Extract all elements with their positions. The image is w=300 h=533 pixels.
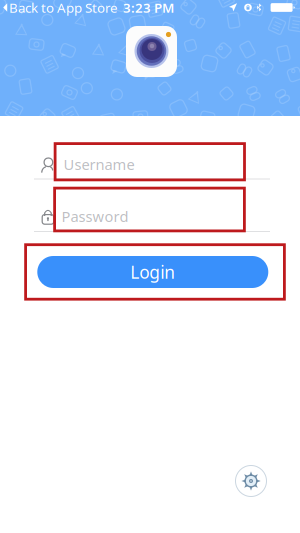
staticText: 3:23 PM <box>123 0 174 16</box>
button[interactable]: Settings <box>235 465 266 496</box>
staticText: Password <box>61 206 128 226</box>
button[interactable]: Login <box>26 245 284 299</box>
staticText: Username <box>63 154 134 174</box>
staticText: Back to App Store <box>9 0 118 16</box>
staticText: Login <box>130 260 175 283</box>
button[interactable]: Password field <box>55 188 244 231</box>
button[interactable]: Username field <box>55 144 244 180</box>
